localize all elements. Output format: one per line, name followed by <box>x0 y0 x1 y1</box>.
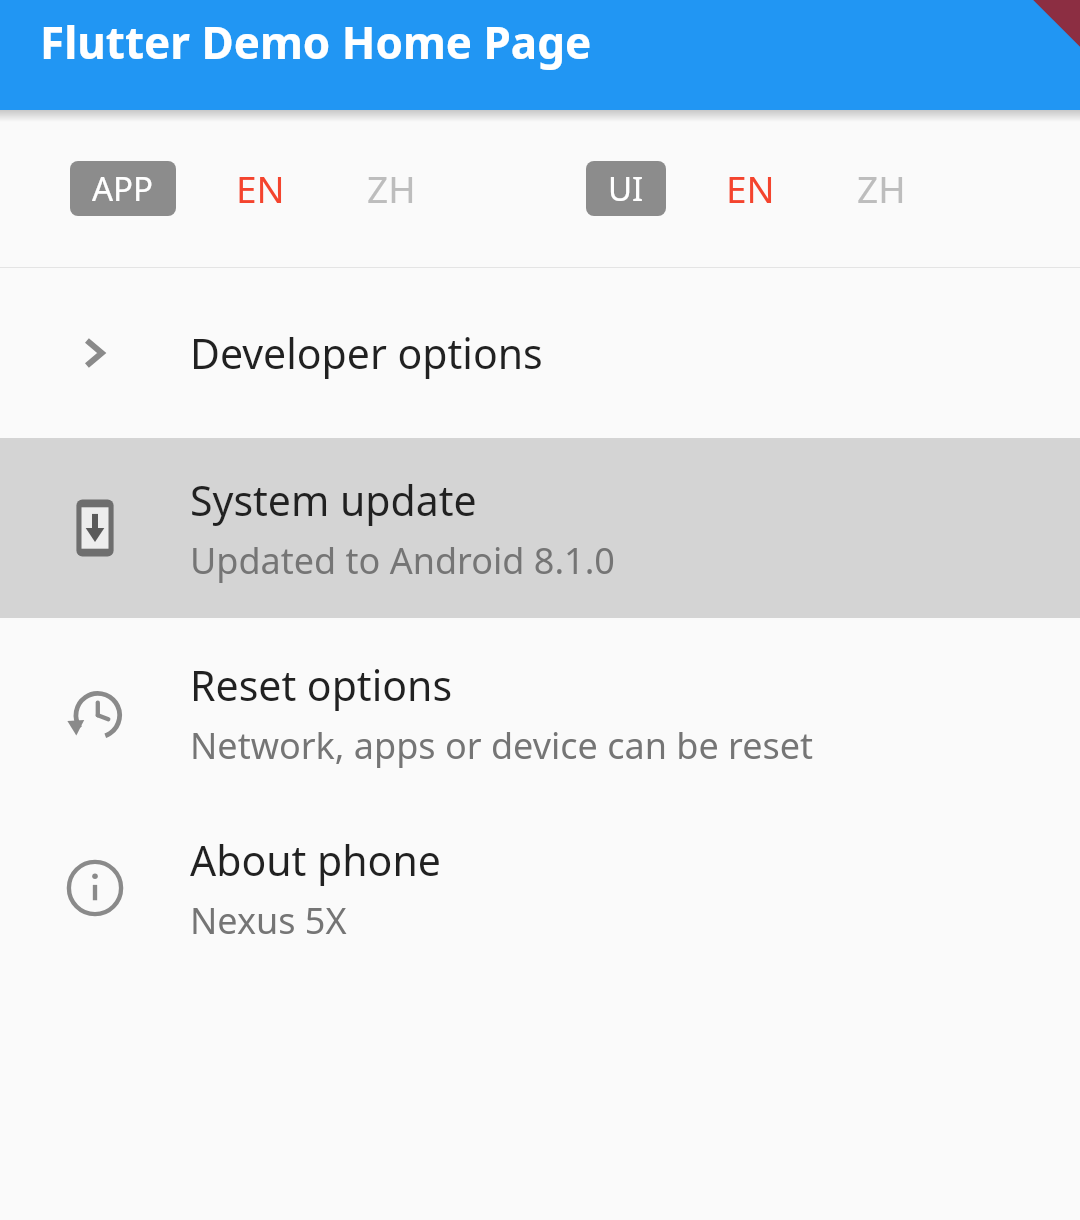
button[interactable]: Open <box>0 268 1080 438</box>
button[interactable]: System update <box>0 438 1080 618</box>
staticText: Network, apps or device can be reset <box>190 721 814 770</box>
staticText: Reset options <box>190 657 453 713</box>
staticText: Updated to Android 8.1.0 <box>190 536 615 585</box>
staticText: ZH <box>367 163 416 213</box>
other: Open <box>71 329 119 377</box>
staticText: APP <box>92 166 154 211</box>
staticText: System update <box>190 472 477 528</box>
button[interactable]: EN <box>726 153 775 223</box>
staticText: ZH <box>857 163 906 213</box>
other: Reset options <box>67 685 123 741</box>
staticText: Nexus 5X <box>190 896 347 945</box>
other: About phone <box>66 859 124 917</box>
button[interactable]: Reset options <box>0 618 1080 808</box>
staticText: EN <box>236 163 285 213</box>
staticText: Flutter Demo Home Page <box>40 12 592 72</box>
staticText: UI <box>608 166 644 211</box>
button[interactable]: APP <box>70 161 176 216</box>
button[interactable]: ZH <box>367 153 416 223</box>
staticText: Developer options <box>190 325 543 381</box>
button[interactable]: ZH <box>857 153 906 223</box>
staticText: EN <box>726 163 775 213</box>
button[interactable]: EN <box>236 153 285 223</box>
button[interactable]: About phone <box>0 808 1080 968</box>
button[interactable]: UI <box>586 161 666 216</box>
other: System update <box>65 498 125 558</box>
staticText: About phone <box>190 832 441 888</box>
